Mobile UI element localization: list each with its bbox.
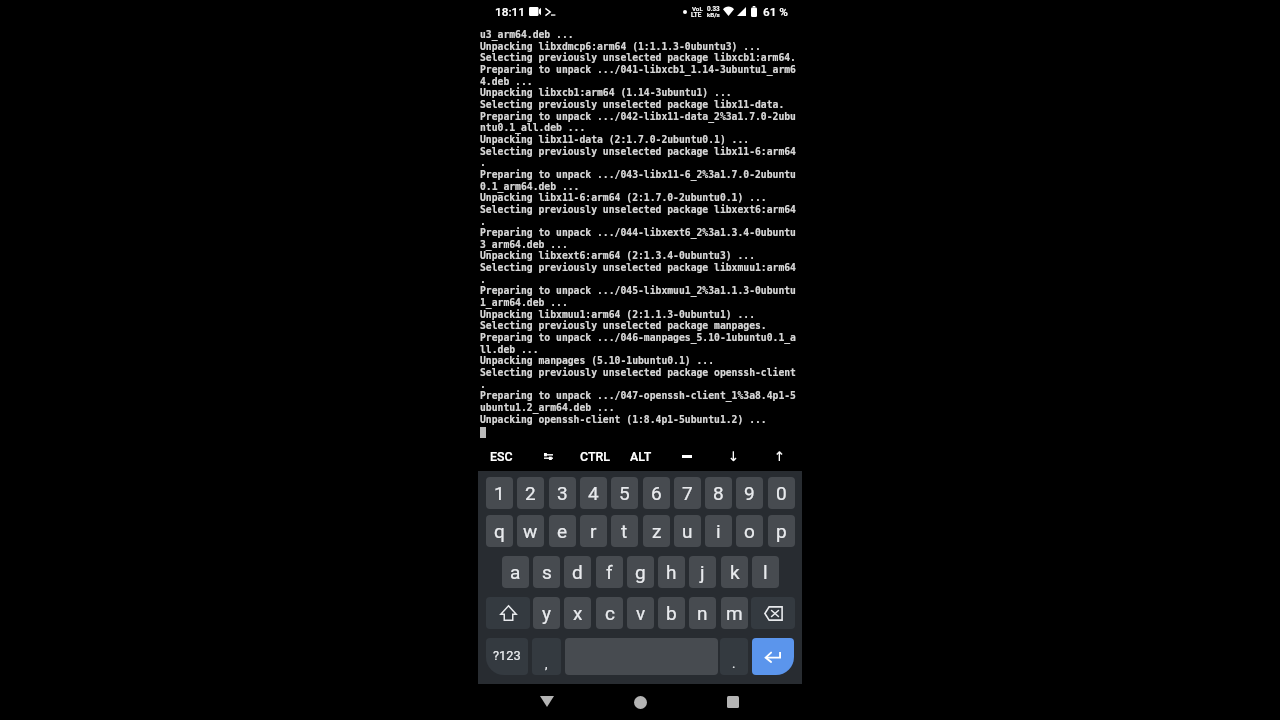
button[interactable]: 5 bbox=[611, 477, 638, 509]
staticText: Selecting previously unselected package … bbox=[480, 99, 785, 110]
button[interactable]: z bbox=[643, 515, 670, 547]
staticText: t bbox=[621, 520, 628, 542]
staticText: Unpacking openssh-client (1:8.4p1-5ubunt… bbox=[480, 414, 767, 425]
button[interactable]: ALT bbox=[618, 441, 664, 471]
staticText: u bbox=[682, 520, 693, 542]
button[interactable]: 0 bbox=[768, 477, 795, 509]
button[interactable]: q bbox=[486, 515, 513, 547]
staticText: , bbox=[545, 656, 548, 671]
staticText: 7 bbox=[682, 482, 693, 504]
staticText: s bbox=[542, 561, 552, 583]
button[interactable]: g bbox=[627, 556, 654, 588]
button[interactable]: e bbox=[549, 515, 576, 547]
staticText: 2 bbox=[525, 482, 536, 504]
button[interactable]: Terminal output bbox=[478, 0, 802, 441]
staticText: Preparing to unpack .../041-libxcb1_1.14… bbox=[480, 64, 796, 75]
staticText: Unpacking libx11-6:arm64 (2:1.7.0-2ubunt… bbox=[480, 192, 767, 203]
button[interactable]: v bbox=[627, 597, 654, 629]
staticText: l bbox=[763, 561, 768, 583]
button[interactable]: 6 bbox=[643, 477, 670, 509]
button[interactable]: Arrow down bbox=[710, 441, 756, 471]
button[interactable]: m bbox=[721, 597, 748, 629]
button[interactable]: CTRL bbox=[572, 441, 618, 471]
staticText: w bbox=[523, 520, 538, 542]
staticText: . bbox=[480, 274, 486, 285]
staticText: p bbox=[776, 520, 787, 542]
button[interactable]: x bbox=[564, 597, 591, 629]
staticText: ESC bbox=[490, 449, 513, 464]
staticText: CTRL bbox=[580, 449, 610, 464]
button[interactable]: 9 bbox=[736, 477, 763, 509]
button[interactable]: s bbox=[533, 556, 560, 588]
staticText: ll.deb ... bbox=[480, 344, 539, 355]
button[interactable]: Arrow up bbox=[756, 441, 802, 471]
staticText: d bbox=[572, 561, 583, 583]
staticText: 61 % bbox=[763, 5, 789, 19]
button[interactable]: , bbox=[532, 638, 561, 675]
button[interactable]: n bbox=[689, 597, 716, 629]
button[interactable]: Delete bbox=[751, 597, 795, 629]
staticText: 4.deb ... bbox=[480, 76, 533, 87]
staticText: Preparing to unpack .../042-libx11-data_… bbox=[480, 111, 796, 122]
staticText: c bbox=[605, 602, 615, 624]
staticText: LTE bbox=[691, 11, 702, 19]
button[interactable]: ESC bbox=[478, 441, 525, 471]
button[interactable]: ?123 bbox=[486, 638, 528, 675]
staticText: n bbox=[697, 602, 708, 624]
staticText: j bbox=[700, 561, 705, 583]
button[interactable]: r bbox=[580, 515, 607, 547]
staticText: ↓ bbox=[728, 449, 739, 464]
staticText: ↑ bbox=[774, 449, 785, 464]
staticText: f bbox=[606, 561, 613, 583]
button[interactable]: . bbox=[720, 638, 748, 675]
button[interactable]: Enter bbox=[752, 638, 794, 675]
staticText: 1 bbox=[494, 482, 505, 504]
button[interactable]: 1 bbox=[486, 477, 513, 509]
button[interactable]: j bbox=[689, 556, 716, 588]
button[interactable]: b bbox=[658, 597, 685, 629]
button[interactable]: 4 bbox=[580, 477, 607, 509]
staticText: . bbox=[732, 656, 736, 671]
staticText: i bbox=[716, 520, 721, 542]
button[interactable]: i bbox=[705, 515, 732, 547]
button[interactable]: 2 bbox=[517, 477, 544, 509]
staticText: ntu0.1_all.deb ... bbox=[480, 122, 586, 133]
staticText: Unpacking libxcb1:arm64 (1.14-3ubuntu1) … bbox=[480, 87, 732, 98]
button[interactable]: y bbox=[533, 597, 560, 629]
button[interactable]: t bbox=[611, 515, 638, 547]
staticText: o bbox=[744, 520, 755, 542]
button[interactable]: Tab bbox=[525, 441, 572, 471]
button[interactable]: u bbox=[674, 515, 701, 547]
button[interactable]: f bbox=[596, 556, 623, 588]
button[interactable]: c bbox=[596, 597, 623, 629]
button[interactable]: l bbox=[752, 556, 779, 588]
button[interactable]: Shift bbox=[486, 597, 530, 629]
button[interactable]: a bbox=[502, 556, 529, 588]
staticText: Selecting previously unselected package … bbox=[480, 367, 796, 378]
staticText: kB/s bbox=[707, 11, 720, 18]
button[interactable]: d bbox=[564, 556, 591, 588]
button[interactable]: p bbox=[768, 515, 795, 547]
button[interactable]: Home bbox=[617, 687, 663, 717]
button[interactable]: 3 bbox=[549, 477, 576, 509]
staticText: . bbox=[480, 216, 486, 227]
button[interactable]: Recents bbox=[710, 687, 756, 717]
button[interactable]: 8 bbox=[705, 477, 732, 509]
button[interactable]: Back bbox=[524, 686, 570, 716]
button[interactable]: h bbox=[658, 556, 685, 588]
button[interactable]: k bbox=[721, 556, 748, 588]
staticText: u3_arm64.deb ... bbox=[480, 29, 574, 40]
staticText: Unpacking manpages (5.10-1ubuntu0.1) ... bbox=[480, 355, 715, 366]
staticText: Unpacking libx11-data (2:1.7.0-2ubuntu0.… bbox=[480, 134, 750, 145]
staticText: h bbox=[666, 561, 677, 583]
staticText: 0.33 bbox=[707, 5, 720, 13]
staticText: Unpacking libxext6:arm64 (2:1.3.4-0ubunt… bbox=[480, 250, 756, 261]
staticText: ALT bbox=[630, 449, 652, 464]
button[interactable]: 7 bbox=[674, 477, 701, 509]
button[interactable]: o bbox=[736, 515, 763, 547]
staticText: b bbox=[666, 602, 677, 624]
button[interactable]: Dash bbox=[664, 441, 710, 471]
button[interactable]: w bbox=[517, 515, 544, 547]
staticText: 9 bbox=[744, 482, 755, 504]
